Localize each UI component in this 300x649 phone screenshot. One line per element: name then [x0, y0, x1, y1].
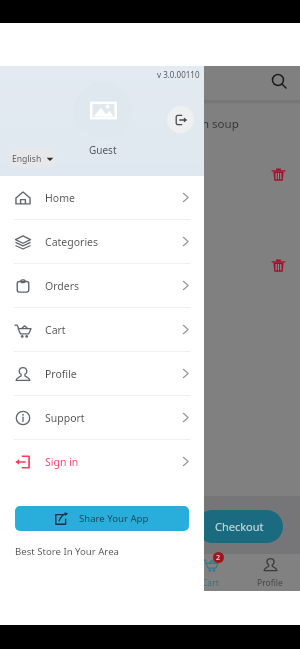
staticText: Support: [45, 411, 85, 425]
staticText: n soup: [202, 116, 239, 132]
staticText: Home: [45, 191, 75, 205]
staticText: Sign in: [45, 455, 79, 469]
button[interactable]: Profile: [240, 554, 300, 591]
button[interactable]: Support: [0, 396, 204, 439]
staticText: Checkout: [215, 519, 264, 534]
button[interactable]: 2: [180, 554, 240, 591]
staticText: 2: [216, 553, 221, 563]
button[interactable]: Sign in: [0, 440, 204, 483]
button[interactable]: Checkout: [196, 510, 283, 543]
staticText: Profile: [45, 367, 77, 381]
button[interactable]: Orders: [0, 264, 204, 307]
staticText: Best Store In Your Area: [15, 545, 119, 558]
staticText: Orders: [45, 279, 80, 293]
button[interactable]: Profile: [0, 352, 204, 395]
button[interactable]: Delete: [271, 167, 286, 182]
button[interactable]: Search: [268, 71, 288, 91]
staticText: Categories: [45, 235, 99, 249]
button[interactable]: English: [9, 149, 57, 168]
staticText: English: [12, 153, 42, 165]
button[interactable]: Home: [0, 176, 204, 219]
button[interactable]: Share Your App: [15, 506, 189, 531]
button[interactable]: Cart: [0, 308, 204, 351]
staticText: Cart: [45, 323, 66, 337]
button[interactable]: Logout: [167, 106, 194, 133]
staticText: Profile: [257, 577, 283, 589]
button[interactable]: Delete: [271, 258, 286, 273]
staticText: v 3.0.00110: [157, 69, 200, 80]
staticText: Share Your App: [79, 512, 149, 525]
staticText: Guest: [89, 143, 117, 157]
button[interactable]: Categories: [0, 220, 204, 263]
staticText: Cart: [202, 577, 219, 589]
